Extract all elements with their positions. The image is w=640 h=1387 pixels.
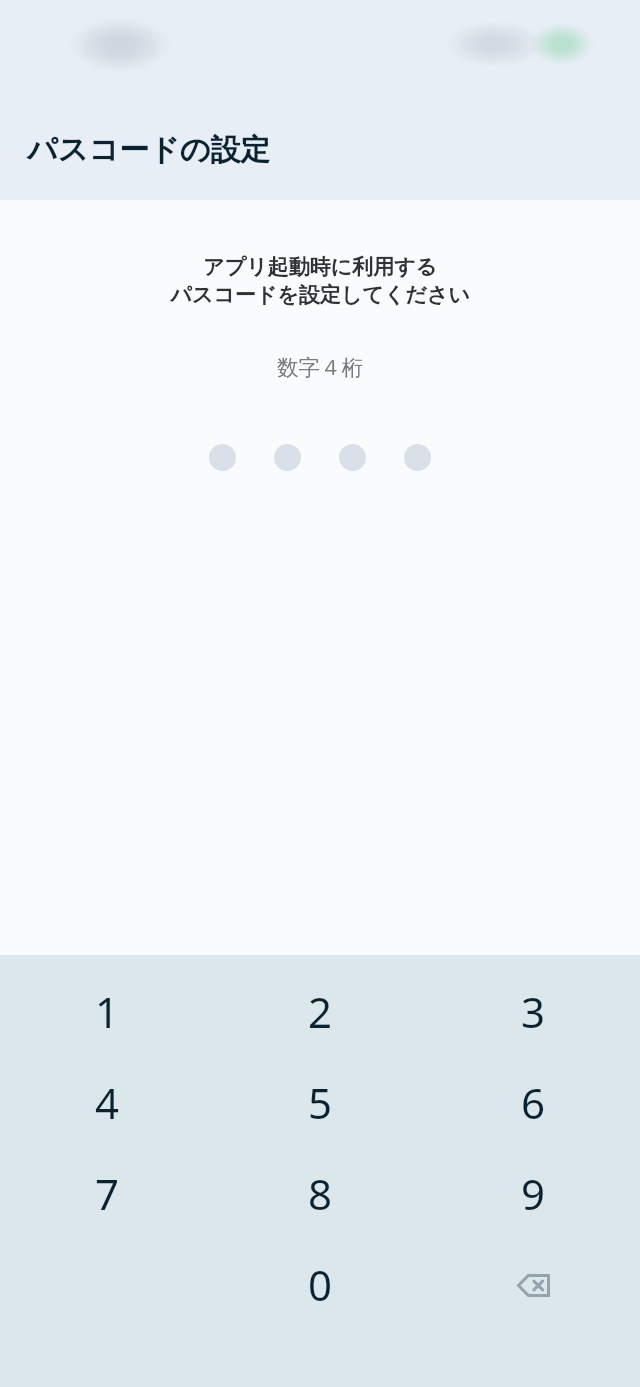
button[interactable]: 4 bbox=[0, 1057, 214, 1148]
staticText: 6 bbox=[521, 1074, 546, 1131]
button[interactable]: 1 bbox=[0, 966, 214, 1057]
staticText: 2 bbox=[308, 983, 333, 1040]
staticText: 数字４桁 bbox=[277, 354, 363, 381]
button[interactable]: 3 bbox=[427, 966, 640, 1057]
button[interactable]: 5 bbox=[214, 1057, 427, 1148]
staticText: 1 bbox=[95, 983, 120, 1040]
button[interactable]: 0 bbox=[214, 1239, 427, 1330]
button[interactable]: 6 bbox=[427, 1057, 640, 1148]
staticText: アプリ起動時に利用する パスコードを設定してください bbox=[170, 254, 470, 308]
staticText: 9 bbox=[521, 1165, 546, 1222]
button[interactable]: 9 bbox=[427, 1148, 640, 1239]
button[interactable]: 8 bbox=[214, 1148, 427, 1239]
staticText: 0 bbox=[308, 1256, 333, 1313]
staticText: 5 bbox=[308, 1074, 333, 1131]
button[interactable]: Delete bbox=[427, 1239, 640, 1330]
staticText: 8 bbox=[308, 1165, 333, 1222]
button[interactable]: 7 bbox=[0, 1148, 214, 1239]
staticText: 7 bbox=[95, 1165, 120, 1222]
button[interactable]: 2 bbox=[214, 966, 427, 1057]
staticText: 3 bbox=[521, 983, 546, 1040]
staticText: 4 bbox=[95, 1074, 120, 1131]
staticText: パスコードの設定 bbox=[27, 131, 271, 169]
